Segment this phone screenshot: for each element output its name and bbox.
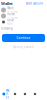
button[interactable]: Add account — [26, 2, 43, 5]
staticText: Indexing — [1, 27, 13, 30]
staticText: Add account — [26, 2, 43, 5]
staticText: Home — [7, 12, 15, 16]
staticText: idle — [7, 22, 13, 25]
button[interactable]: Home — [0, 13, 47, 19]
staticText: Work — [7, 6, 13, 10]
staticText: 3 items — [7, 16, 17, 19]
staticText: Wallet — [1, 1, 13, 6]
staticText: Syncing paused — [13, 45, 34, 49]
button[interactable]: Continue — [2, 34, 45, 42]
button[interactable]: Drive — [0, 19, 47, 25]
staticText: Wallet — [6, 89, 10, 99]
staticText: Drive — [7, 18, 14, 22]
staticText: 8 items — [7, 10, 17, 13]
button[interactable]: More — [30, 91, 40, 97]
button[interactable]: Shared — [20, 91, 30, 97]
button[interactable]: Work — [0, 7, 47, 13]
button[interactable]: Wallet — [2, 91, 10, 97]
staticText: Continue — [16, 36, 30, 40]
button[interactable]: Files — [10, 91, 20, 97]
